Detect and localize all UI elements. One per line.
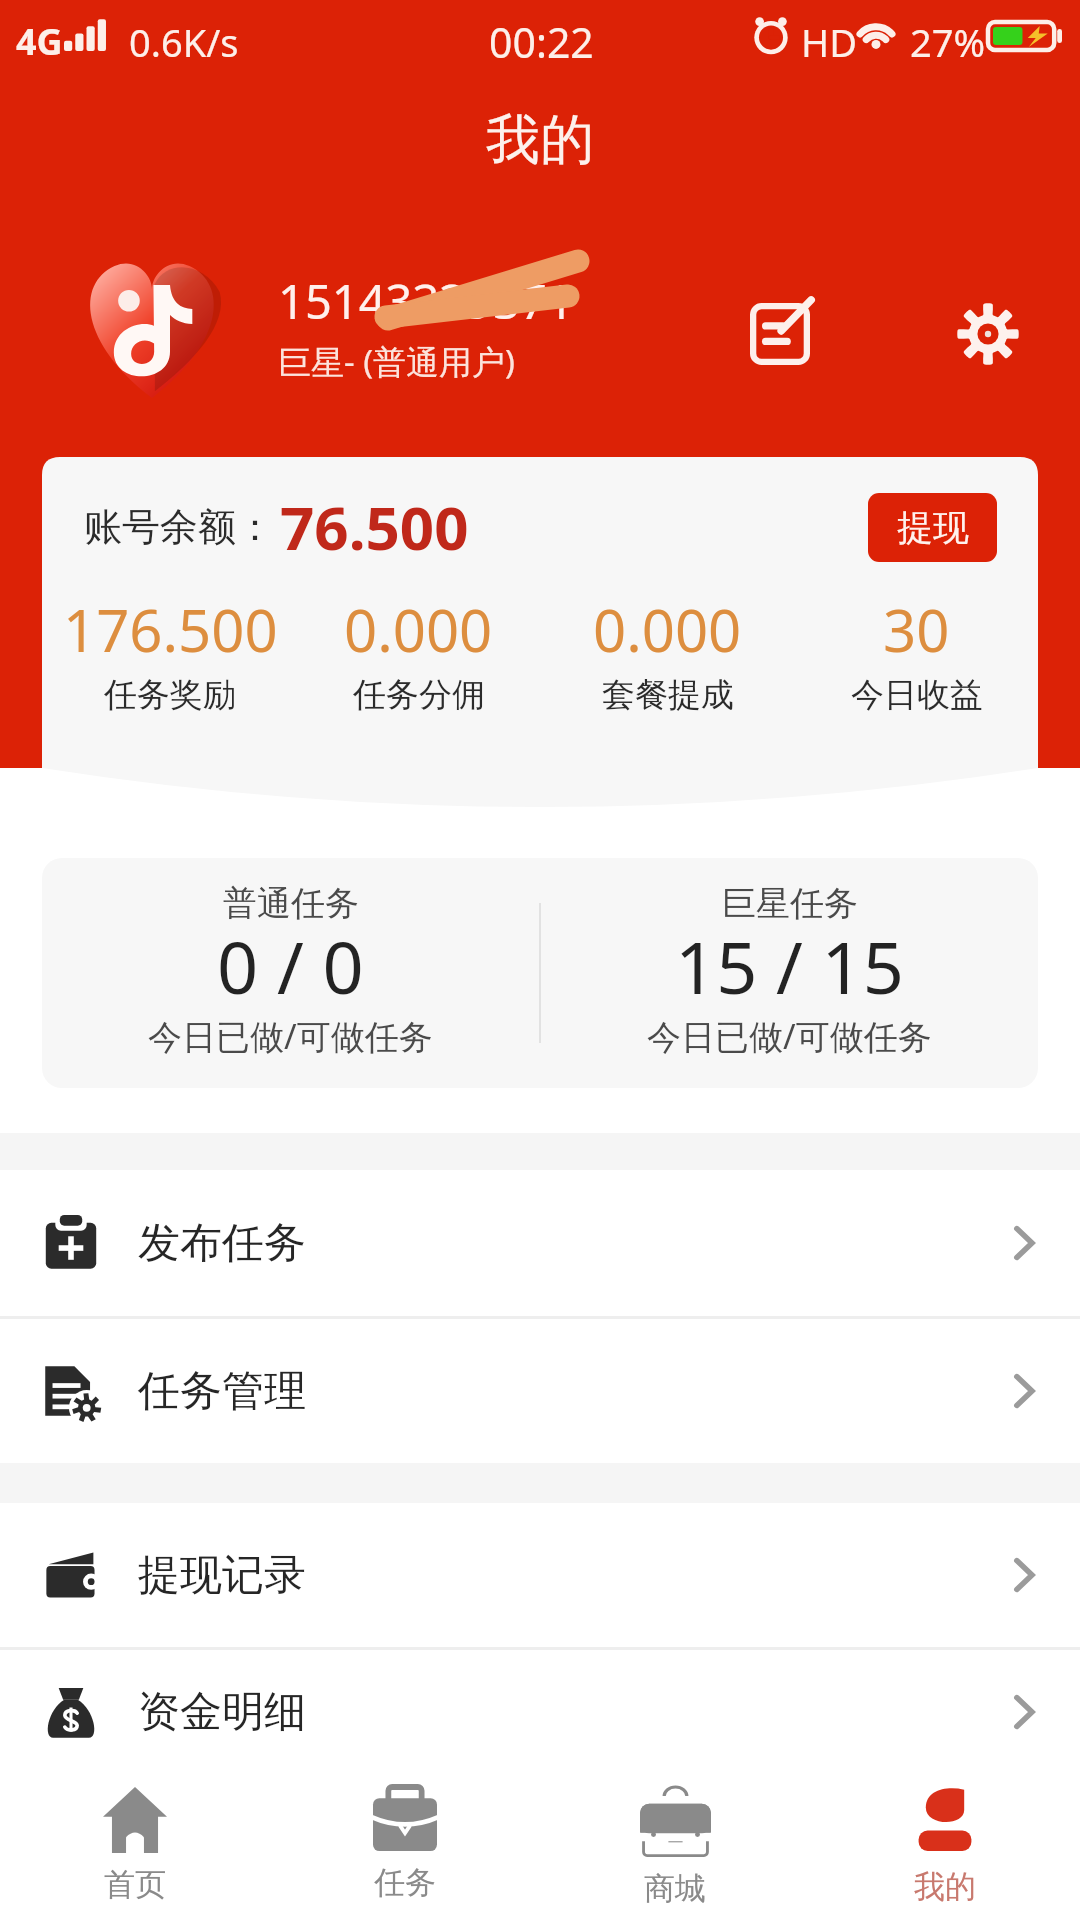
button[interactable]: 任务管理 [0,1319,1080,1463]
staticText: 套餐提成 [602,674,734,716]
staticText: 27% [910,16,986,68]
staticText: 账号余额： [84,503,274,551]
button[interactable]: 任务 [270,1775,540,1920]
staticText: 我的 [486,106,594,174]
button[interactable]: 提现记录 [0,1503,1080,1647]
staticText: 任务管理 [138,1365,306,1418]
staticText: 今日收益 [851,674,983,716]
button[interactable]: 我的 [810,1775,1080,1920]
staticText: HD [801,16,857,68]
button[interactable]: 发布任务 [0,1170,1080,1316]
button[interactable]: 资金明细 [0,1650,1080,1774]
staticText: 今日已做/可做任务 [148,1013,433,1059]
staticText: 0.000 [593,590,742,669]
staticText: 任务 [374,1863,436,1902]
staticText: 资金明细 [138,1686,306,1739]
staticText: 4G [16,17,63,66]
staticText: 176.500 [63,590,278,669]
staticText: 30 [883,590,950,669]
staticText: 76.500 [280,486,469,568]
staticText: 首页 [104,1865,166,1904]
staticText: 任务分佣 [353,674,485,716]
staticText: 发布任务 [138,1217,306,1270]
staticText: 00:22 [489,14,594,70]
staticText: 0.000 [344,590,493,669]
staticText: 商城 [644,1869,706,1908]
staticText: 提现记录 [138,1549,306,1602]
button[interactable]: 商城 [540,1775,810,1920]
staticText: 0.6K/s [129,16,239,68]
staticText: 巨星任务 [722,882,858,925]
staticText: 15 / 15 [675,917,904,1015]
button[interactable]: 首页 [0,1775,270,1920]
button[interactable]: Settings [946,292,1030,376]
staticText: 今日已做/可做任务 [647,1013,932,1059]
staticText: 巨星- (普通用户) [278,339,516,384]
button[interactable]: 提现 [868,493,997,562]
staticText: 普通任务 [223,882,359,925]
staticText: 0 / 0 [217,917,364,1015]
staticText: 任务奖励 [104,674,236,716]
staticText: 我的 [914,1867,976,1906]
button[interactable]: Edit profile [738,292,822,376]
staticText: 提现 [897,505,969,550]
staticText: 15143339371 [278,269,574,333]
